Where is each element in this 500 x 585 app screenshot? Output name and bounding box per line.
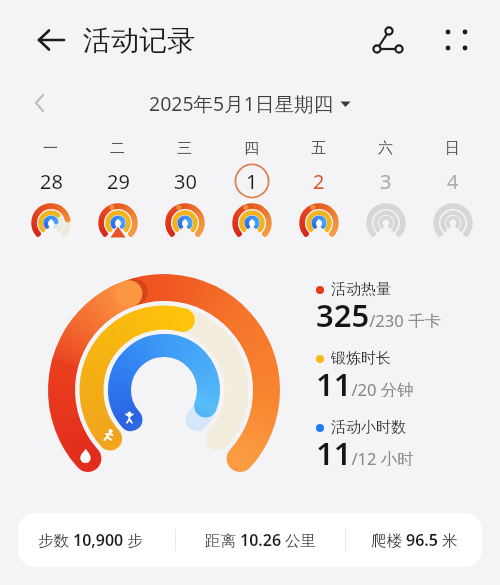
button[interactable]: 三 bbox=[151, 138, 218, 249]
staticText: 日 bbox=[445, 139, 460, 158]
button[interactable]: 四 bbox=[218, 138, 285, 249]
button[interactable]: 步数 10,900 步 bbox=[18, 513, 175, 567]
staticText: 锻炼时长 bbox=[331, 349, 391, 368]
staticText: 六 bbox=[378, 139, 393, 158]
staticText: 1 bbox=[246, 168, 258, 195]
button[interactable] bbox=[38, 28, 66, 52]
staticText: 四 bbox=[244, 139, 259, 158]
button[interactable]: 五 bbox=[285, 138, 352, 249]
staticText: 三 bbox=[177, 139, 192, 158]
button[interactable]: 爬楼 96.5 米 bbox=[346, 513, 482, 567]
button[interactable]: 距离 10.26 公里 bbox=[176, 513, 345, 567]
button[interactable]: 二 bbox=[84, 138, 151, 249]
staticText: 325/230 千卡 bbox=[316, 294, 441, 328]
staticText: 2025年5月1日星期四 bbox=[149, 90, 333, 117]
staticText: 29 bbox=[107, 168, 130, 195]
staticText: 3 bbox=[380, 168, 392, 195]
staticText: 活动记录 bbox=[83, 23, 195, 58]
staticText: 11/12 小时 bbox=[316, 432, 414, 466]
button[interactable]: 一 bbox=[17, 138, 84, 249]
staticText: 活动热量 bbox=[331, 280, 391, 299]
button[interactable]: 日 bbox=[419, 138, 486, 249]
button[interactable] bbox=[372, 25, 403, 55]
button[interactable]: 2025年5月1日星期四 bbox=[0, 88, 500, 118]
staticText: 4 bbox=[447, 168, 459, 195]
staticText: 爬楼 96.5 米 bbox=[371, 529, 458, 551]
staticText: 28 bbox=[40, 168, 63, 195]
button[interactable] bbox=[446, 28, 474, 52]
staticText: 距离 10.26 公里 bbox=[205, 529, 317, 551]
staticText: 11/20 分钟 bbox=[316, 363, 414, 397]
staticText: 一 bbox=[43, 139, 58, 158]
staticText: 二 bbox=[110, 139, 125, 158]
staticText: 活动小时数 bbox=[331, 418, 406, 437]
staticText: 2 bbox=[313, 168, 325, 195]
staticText: 30 bbox=[174, 168, 197, 195]
staticText: 五 bbox=[311, 139, 326, 158]
staticText: 步数 10,900 步 bbox=[38, 529, 143, 551]
button[interactable]: 六 bbox=[352, 138, 419, 249]
